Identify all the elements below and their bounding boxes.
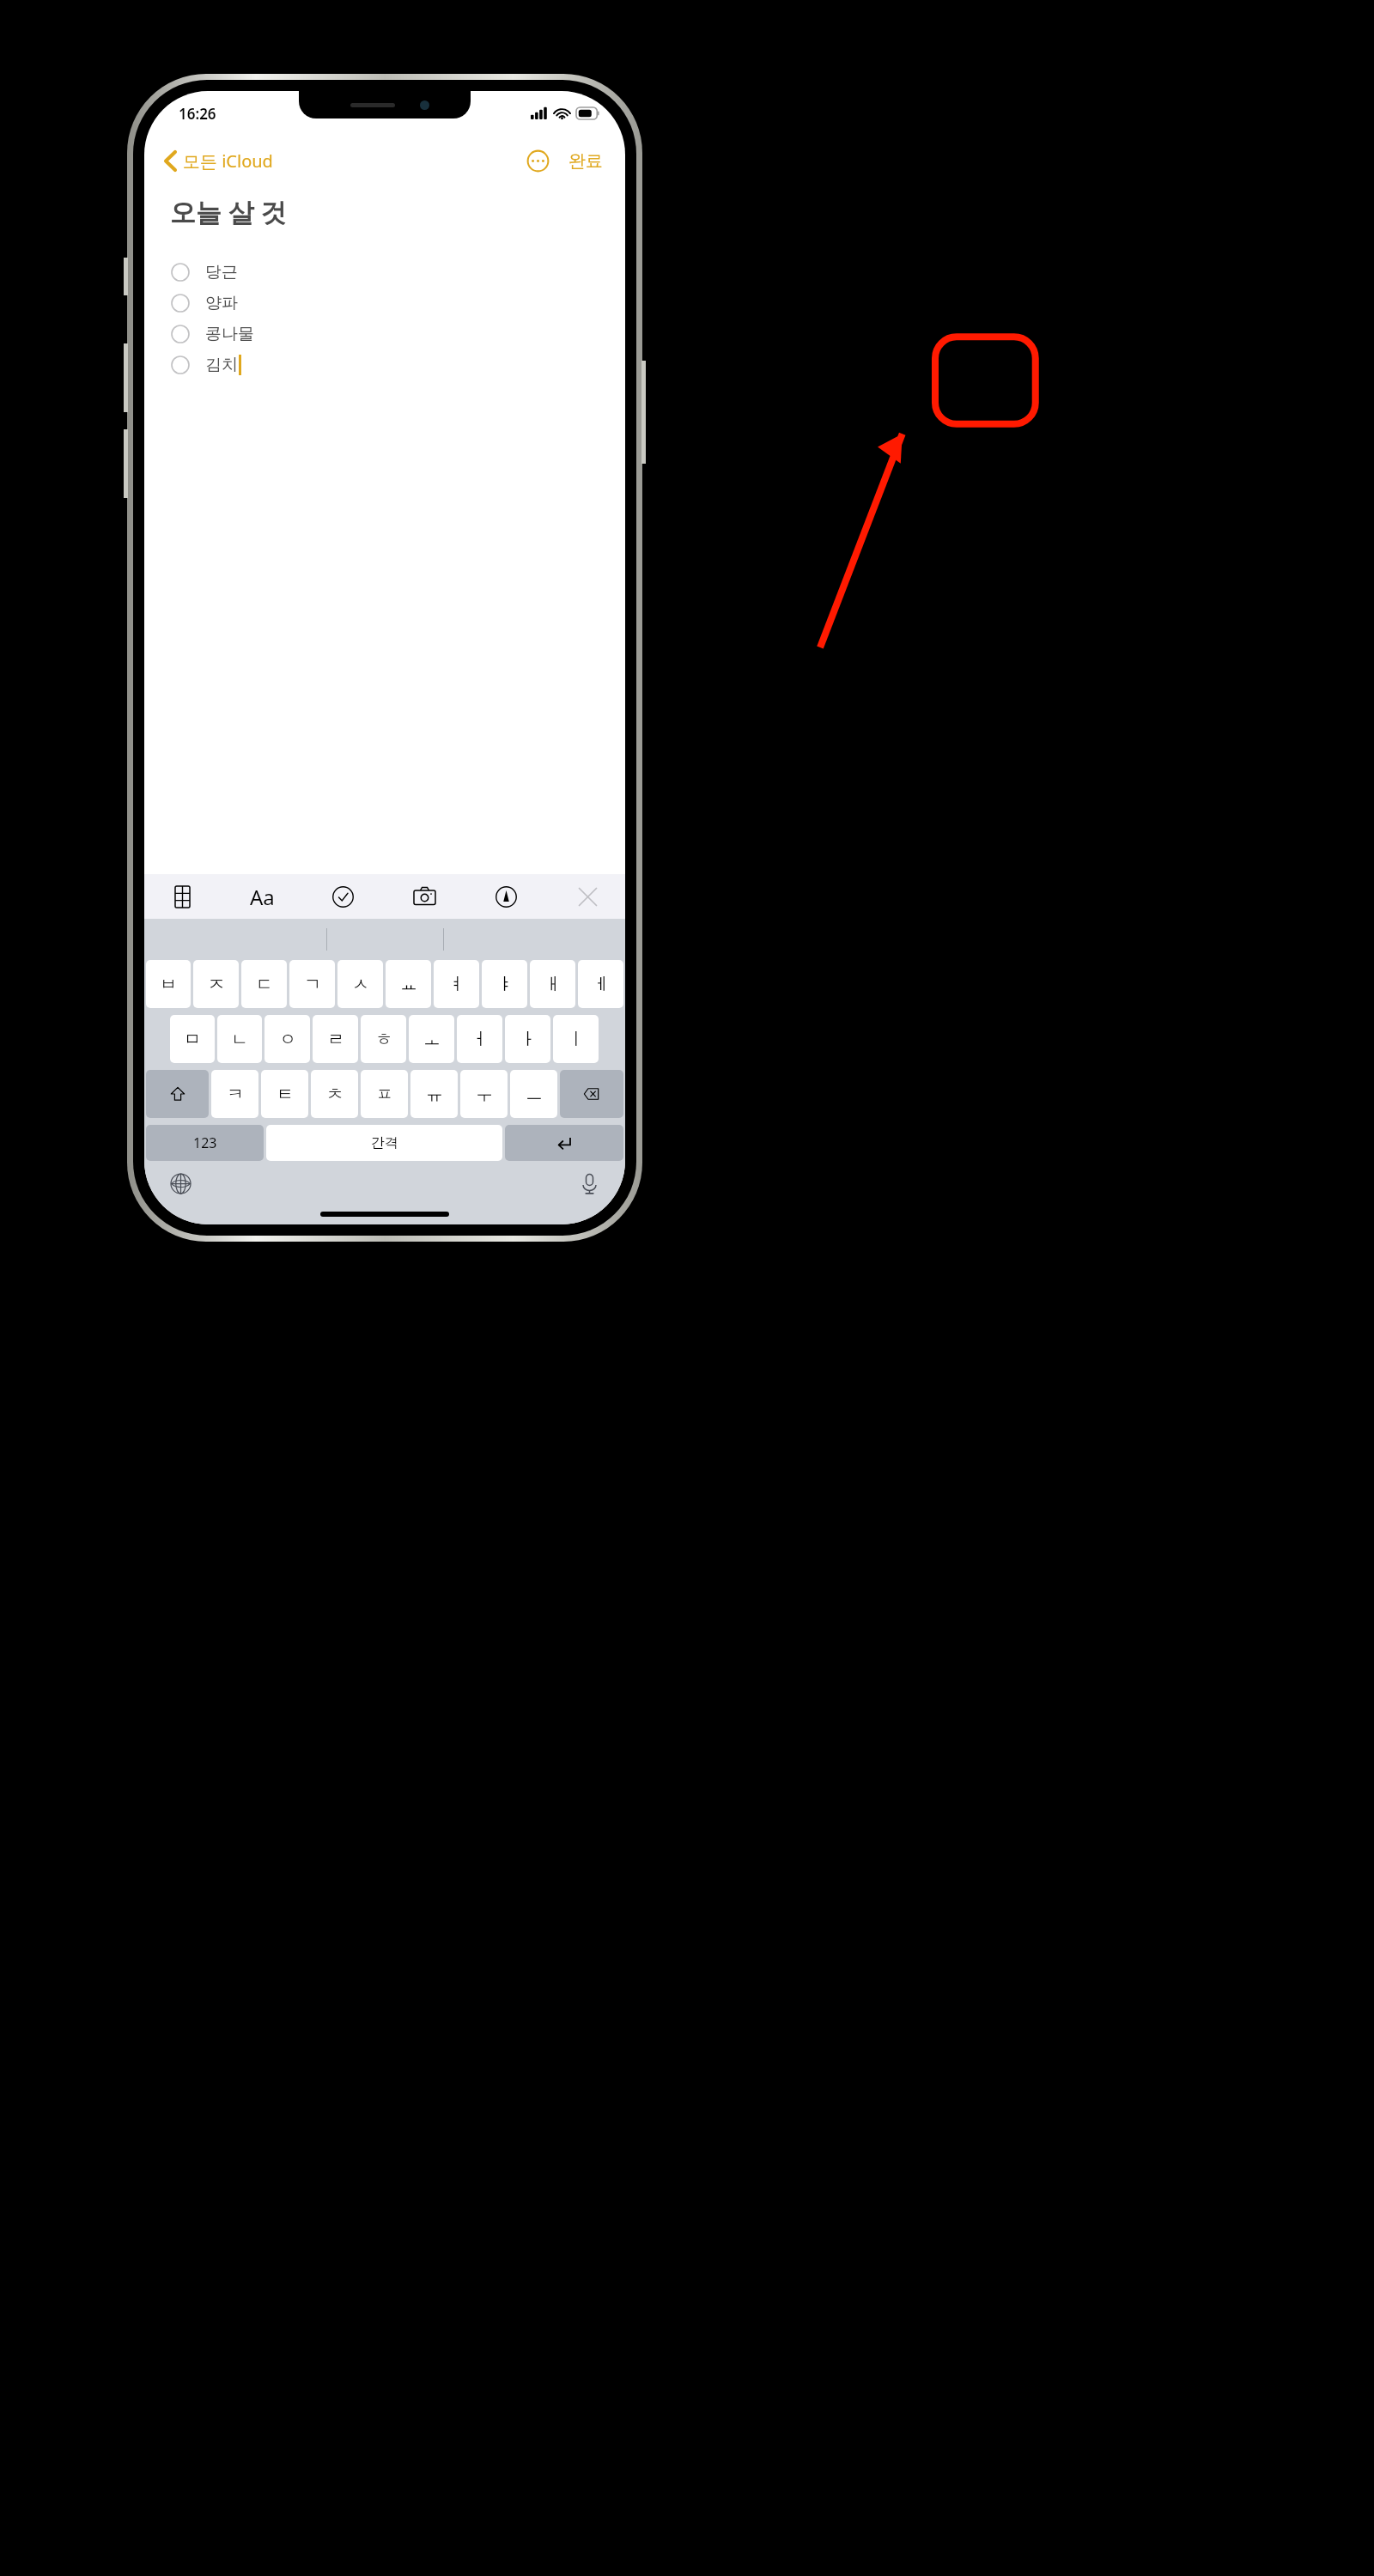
button[interactable]: ㅓ	[457, 1015, 502, 1063]
button[interactable]: 완료	[565, 145, 606, 177]
button[interactable]: 모든 iCloud	[160, 144, 278, 178]
staticText: ㄴ	[231, 1029, 248, 1050]
staticText: ㅡ	[526, 1084, 543, 1105]
staticText: ㅎ	[375, 1029, 392, 1050]
staticText: ㅅ	[352, 974, 369, 995]
button[interactable]: ㅔ	[578, 960, 623, 1008]
button[interactable]: Aa	[245, 878, 280, 916]
button[interactable]: Checklist	[324, 878, 362, 915]
staticText: 123	[193, 1133, 217, 1152]
staticText: ㅑ	[496, 974, 514, 995]
staticText: ㄹ	[327, 1029, 344, 1050]
button[interactable]: ㅌ	[261, 1070, 308, 1118]
staticText: ㅠ	[426, 1084, 443, 1105]
button[interactable]: ㄱ	[289, 960, 335, 1008]
button[interactable]: 김치	[144, 349, 625, 380]
staticText: Aa	[250, 883, 275, 911]
staticText: 오늘 살 것	[170, 194, 287, 229]
button[interactable]: ㅛ	[386, 960, 431, 1008]
staticText: ㄱ	[304, 974, 321, 995]
staticText: ㅐ	[544, 974, 562, 995]
staticText: ㅗ	[423, 1029, 441, 1050]
button[interactable]: ㅁ	[170, 1015, 215, 1063]
staticText: 16:26	[179, 104, 216, 124]
button[interactable]: 123	[146, 1125, 264, 1161]
button[interactable]: Shift	[146, 1070, 209, 1118]
staticText: 모든 iCloud	[183, 149, 273, 173]
button[interactable]: 당근	[144, 257, 625, 288]
button[interactable]: ㅗ	[409, 1015, 454, 1063]
staticText: ㅇ	[279, 1029, 296, 1050]
button[interactable]: 콩나물	[144, 319, 625, 349]
staticText: ㅏ	[520, 1029, 537, 1050]
staticText: 김치	[205, 355, 238, 375]
staticText: ㅈ	[208, 974, 225, 995]
button[interactable]: ㅂ	[146, 960, 191, 1008]
staticText: ㅛ	[400, 974, 417, 995]
button[interactable]: 양파	[144, 288, 625, 319]
button[interactable]: Backspace	[560, 1070, 623, 1118]
button[interactable]: ㄹ	[313, 1015, 358, 1063]
button[interactable]: ㅠ	[410, 1070, 458, 1118]
button[interactable]: ㅋ	[211, 1070, 258, 1118]
staticText: ㅔ	[593, 974, 610, 995]
staticText: ㅊ	[326, 1084, 343, 1105]
staticText: ㅁ	[184, 1029, 201, 1050]
button[interactable]: ㅍ	[361, 1070, 408, 1118]
staticText: 당근	[205, 262, 238, 283]
button[interactable]: Camera	[405, 878, 443, 915]
staticText: ㅍ	[376, 1084, 393, 1105]
button[interactable]: Table	[163, 878, 201, 915]
staticText: ㅋ	[227, 1084, 244, 1105]
button[interactable]: ㅅ	[337, 960, 383, 1008]
button[interactable]: ㅏ	[505, 1015, 550, 1063]
staticText: ㅂ	[160, 974, 177, 995]
button[interactable]: ㅇ	[264, 1015, 310, 1063]
button[interactable]: More options	[520, 143, 555, 178]
button[interactable]: ㅎ	[361, 1015, 406, 1063]
button[interactable]: ㅡ	[510, 1070, 557, 1118]
staticText: ㅓ	[471, 1029, 489, 1050]
button[interactable]: Close	[568, 878, 606, 915]
button[interactable]: Change keyboard	[163, 1166, 198, 1200]
button[interactable]: ㄴ	[217, 1015, 262, 1063]
button[interactable]: ㅜ	[460, 1070, 508, 1118]
button[interactable]: ㅈ	[193, 960, 239, 1008]
staticText: 양파	[205, 293, 238, 313]
staticText: 콩나물	[205, 324, 254, 344]
staticText: ㄷ	[256, 974, 273, 995]
button[interactable]: ㅕ	[434, 960, 479, 1008]
button[interactable]: ㅑ	[482, 960, 527, 1008]
staticText: ㅕ	[448, 974, 465, 995]
staticText: 완료	[568, 150, 603, 172]
button[interactable]: ㅊ	[311, 1070, 358, 1118]
button[interactable]: Dictation	[572, 1166, 606, 1200]
button[interactable]: Return	[505, 1125, 623, 1161]
staticText: ㅜ	[476, 1084, 493, 1105]
button[interactable]: ㄷ	[241, 960, 287, 1008]
button[interactable]: ㅐ	[530, 960, 575, 1008]
staticText: 간격	[371, 1134, 398, 1151]
button[interactable]: ㅣ	[553, 1015, 599, 1063]
button[interactable]: Markup	[487, 878, 525, 915]
staticText: ㅣ	[568, 1029, 585, 1050]
staticText: ㅌ	[277, 1084, 294, 1105]
button[interactable]: 간격	[266, 1125, 502, 1161]
